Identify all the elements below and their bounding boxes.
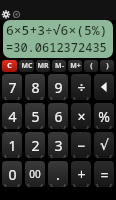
button[interactable]: = [94,161,114,187]
button[interactable]: Backspace [94,74,114,100]
button[interactable]: . [48,161,68,187]
button[interactable]: 00 [25,161,45,187]
staticText: 4 [8,107,17,126]
button[interactable]: 0 [2,161,22,187]
staticText: 6×5+3÷√6×(5%) [6,21,108,39]
staticText: 0 [8,165,17,184]
button[interactable]: % [94,103,114,129]
button[interactable]: + [71,161,91,187]
button[interactable]: 3 [48,132,68,158]
staticText: ( [90,61,93,71]
button[interactable]: M- [52,60,66,72]
button[interactable]: M+ [68,60,82,72]
button[interactable]: − [71,132,91,158]
button[interactable]: ) [100,60,114,72]
staticText: C [7,61,12,71]
staticText: = [100,165,109,184]
button[interactable]: ( [84,60,98,72]
button[interactable]: 5 [25,103,45,129]
staticText: M- [55,61,64,71]
staticText: 3 [54,136,63,155]
button[interactable]: 7 [2,74,22,100]
button[interactable]: 1 [2,132,22,158]
staticText: 9 [54,78,63,97]
button[interactable]: 4 [2,103,22,129]
staticText: M+ [70,61,81,71]
staticText: + [77,165,86,184]
button[interactable]: × [71,103,91,129]
button[interactable]: MC [19,60,34,72]
staticText: ) [106,61,109,71]
button[interactable]: 6 [48,103,68,129]
staticText: ÷ [77,78,86,97]
button[interactable]: MR [36,60,50,72]
staticText: . [56,165,60,184]
staticText: MR [37,61,49,71]
staticText: √ [100,137,109,153]
staticText: =30.06123724357 [6,39,110,57]
staticText: 6 [54,107,63,126]
staticText: 00 [29,167,41,181]
staticText: 1 [8,136,17,155]
staticText: 5 [31,107,40,126]
button[interactable]: 6×5+3÷√6×(5%) [3,20,113,58]
staticText: − [77,136,86,155]
staticText: MC [21,61,33,71]
button[interactable]: 2 [25,132,45,158]
staticText: × [77,107,86,126]
staticText: % [98,107,110,126]
button[interactable]: 8 [25,74,45,100]
staticText: 8 [31,78,40,97]
button[interactable]: ÷ [71,74,91,100]
button[interactable]: 9 [48,74,68,100]
button[interactable]: C [2,60,17,72]
staticText: 7 [8,78,17,97]
button[interactable]: √ [94,132,114,158]
staticText: 2 [31,136,40,155]
